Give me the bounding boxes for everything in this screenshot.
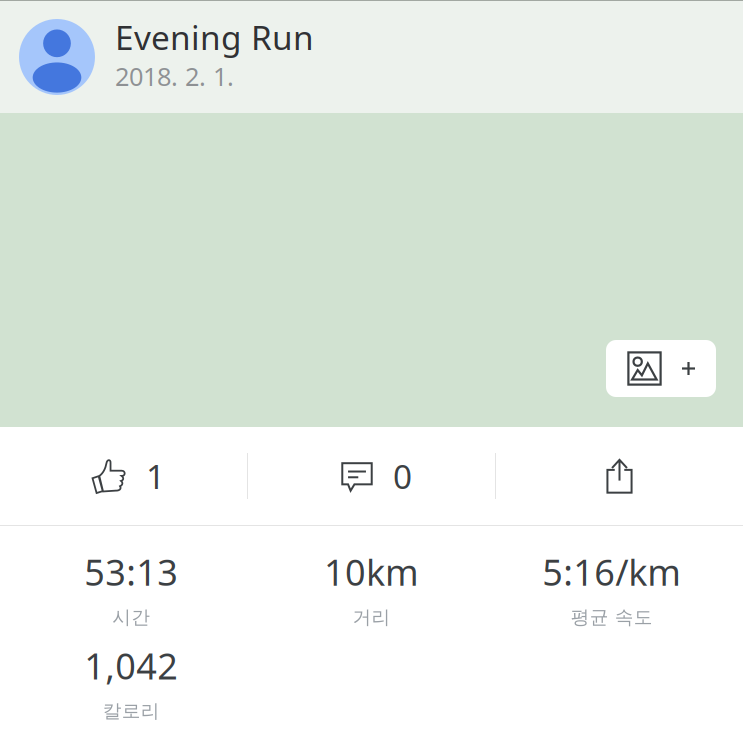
staticText: 1,042 (84, 642, 178, 689)
button[interactable]: 0 (248, 427, 495, 525)
staticText: 칼로리 (103, 699, 160, 722)
staticText: 2018. 2. 1. (115, 59, 234, 93)
staticText: 10km (324, 548, 419, 596)
button[interactable]: Evening Run (0, 1, 743, 113)
staticText: 거리 (352, 606, 390, 629)
staticText: 1 (146, 454, 165, 498)
staticText: 시간 (112, 606, 150, 629)
staticText: 평균 속도 (571, 606, 653, 629)
button[interactable]: Share (496, 427, 743, 525)
button[interactable]: 1 (0, 427, 247, 525)
button[interactable]: Add photo (606, 340, 716, 397)
staticText: Evening Run (115, 15, 314, 59)
staticText: 5:16/km (542, 548, 681, 596)
staticText: 53:13 (84, 548, 178, 596)
staticText: 0 (393, 454, 412, 498)
